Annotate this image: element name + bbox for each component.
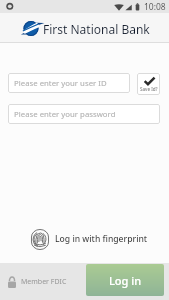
staticText: 10:08	[144, 1, 166, 13]
staticText: Log in	[109, 273, 142, 288]
staticText: First National Bank	[43, 21, 150, 37]
staticText: Please enter your user ID	[14, 78, 107, 89]
button[interactable]: Save Id	[137, 73, 160, 95]
button[interactable]: Please enter your user ID	[8, 73, 130, 93]
staticText: Save Id?	[140, 86, 158, 92]
staticText: Please enter your password	[14, 109, 116, 120]
staticText: Member FDIC	[21, 277, 67, 287]
staticText: Log in with fingerprint	[55, 233, 148, 245]
button[interactable]: Member FDIC	[8, 275, 67, 289]
button[interactable]: Please enter your password	[8, 104, 160, 124]
button[interactable]: Log in	[86, 264, 164, 296]
button[interactable]: Log in with fingerprint	[31, 227, 148, 251]
